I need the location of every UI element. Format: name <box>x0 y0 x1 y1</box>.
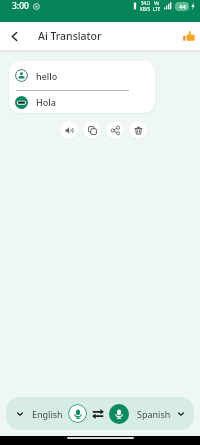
staticText: 54.0 <box>141 0 150 6</box>
button[interactable]: Record Spanish <box>109 404 129 424</box>
button[interactable]: Choose source language <box>13 407 27 421</box>
staticText: Vo <box>154 0 160 6</box>
staticText: LTE <box>153 6 161 12</box>
staticText: hello <box>36 70 58 82</box>
button[interactable]: Swap languages <box>91 407 105 421</box>
button[interactable]: Copy <box>83 121 101 139</box>
staticText: Hola <box>36 96 56 108</box>
button[interactable]: Share <box>106 121 124 139</box>
button[interactable]: Delete <box>129 121 147 139</box>
staticText: KB/S <box>140 6 150 12</box>
button[interactable]: Rate translation <box>178 25 200 47</box>
staticText: Ai Translator <box>38 29 102 43</box>
staticText: English <box>32 408 63 420</box>
button[interactable]: Back <box>0 22 28 50</box>
button[interactable]: Choose target language <box>174 407 188 421</box>
button[interactable]: Speak aloud <box>60 121 78 139</box>
staticText: 3:00 <box>12 0 29 12</box>
staticText: Spanish <box>137 408 171 420</box>
button[interactable]: Record English <box>68 404 87 423</box>
staticText: 44 <box>179 3 186 11</box>
